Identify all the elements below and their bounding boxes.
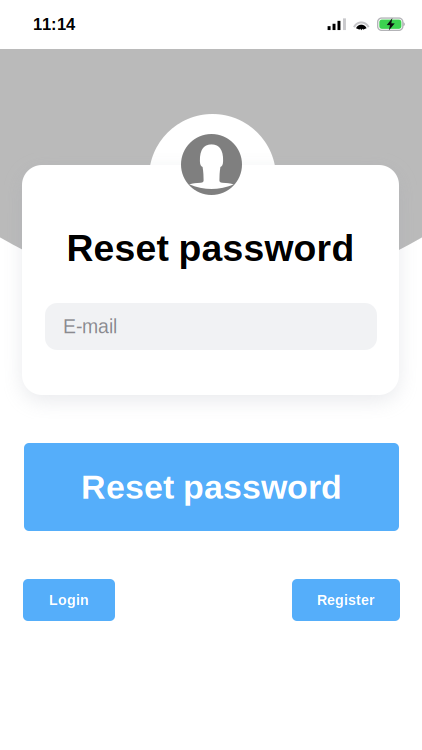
staticText: 11:14 <box>33 15 75 33</box>
staticText: E-mail <box>63 316 117 337</box>
staticText: Reset password <box>66 227 354 269</box>
button[interactable]: Login <box>23 579 115 621</box>
staticText: Register <box>317 592 375 608</box>
button[interactable]: Register <box>292 579 400 621</box>
button[interactable]: Reset password <box>24 443 399 531</box>
button[interactable]: E-mail <box>45 303 377 350</box>
staticText: Login <box>49 592 89 608</box>
staticText: Reset password <box>81 468 342 506</box>
